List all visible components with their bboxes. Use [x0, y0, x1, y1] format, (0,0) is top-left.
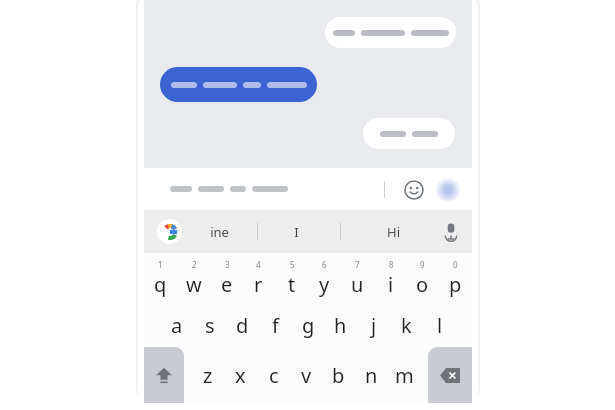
staticText: e — [221, 271, 233, 298]
button[interactable]: Message bubble — [363, 118, 455, 149]
button[interactable]: s — [193, 303, 226, 347]
staticText: x — [235, 362, 246, 389]
button[interactable]: ine — [185, 210, 253, 253]
staticText: b — [332, 362, 345, 389]
staticText: d — [236, 312, 249, 339]
staticText: 4 — [256, 259, 261, 270]
button[interactable]: h — [324, 303, 357, 347]
button[interactable]: x — [224, 347, 257, 403]
staticText: m — [395, 362, 414, 389]
button[interactable]: m — [388, 347, 421, 403]
button[interactable]: 0 — [439, 253, 472, 303]
staticText: i — [388, 271, 394, 298]
button[interactable]: v — [290, 347, 323, 403]
staticText: h — [334, 312, 347, 339]
button[interactable]: Backspace — [428, 347, 472, 403]
staticText: 0 — [453, 259, 458, 270]
staticText: Hi — [387, 223, 400, 241]
button[interactable]: Insert emoji — [402, 178, 426, 202]
staticText: g — [302, 312, 315, 339]
staticText: n — [365, 362, 378, 389]
button[interactable]: Voice input — [440, 220, 462, 242]
button[interactable]: b — [322, 347, 355, 403]
staticText: 5 — [290, 259, 295, 270]
staticText: t — [288, 271, 296, 298]
button[interactable]: 6 — [308, 253, 341, 303]
staticText: f — [272, 312, 279, 339]
staticText: 9 — [420, 259, 425, 270]
staticText: 8 — [389, 259, 394, 270]
staticText: 3 — [225, 259, 230, 270]
staticText: y — [319, 271, 330, 298]
button[interactable]: f — [259, 303, 292, 347]
staticText: o — [416, 271, 429, 298]
button[interactable]: 7 — [341, 253, 374, 303]
staticText: w — [186, 271, 202, 298]
button[interactable]: Shift — [144, 347, 184, 403]
staticText: q — [154, 271, 167, 298]
button[interactable]: Google search — [157, 219, 182, 244]
button[interactable]: 9 — [406, 253, 439, 303]
staticText: k — [401, 312, 412, 339]
button[interactable]: 1 — [144, 253, 177, 303]
staticText: z — [203, 362, 213, 389]
staticText: 7 — [355, 259, 360, 270]
button[interactable]: Hi — [359, 210, 427, 253]
staticText: I — [294, 223, 299, 241]
staticText: u — [351, 271, 364, 298]
staticText: 6 — [322, 259, 327, 270]
staticText: p — [449, 271, 462, 298]
button[interactable]: 8 — [374, 253, 407, 303]
button[interactable]: d — [226, 303, 259, 347]
staticText: v — [301, 362, 312, 389]
button[interactable]: k — [390, 303, 423, 347]
button[interactable]: 4 — [242, 253, 275, 303]
staticText: 2 — [192, 259, 197, 270]
button[interactable]: Message bubble — [325, 17, 456, 48]
staticText: s — [205, 312, 215, 339]
button[interactable]: g — [292, 303, 325, 347]
staticText: c — [269, 362, 279, 389]
button[interactable]: Message bubble — [160, 67, 317, 102]
button[interactable]: a — [160, 303, 193, 347]
button[interactable]: c — [257, 347, 290, 403]
staticText: a — [171, 312, 183, 339]
button[interactable]: Send — [436, 178, 460, 202]
staticText: j — [371, 312, 377, 339]
button[interactable]: 5 — [275, 253, 308, 303]
staticText: l — [437, 312, 443, 339]
button[interactable]: j — [357, 303, 390, 347]
staticText: ine — [210, 223, 229, 241]
button[interactable]: I — [262, 210, 330, 253]
button[interactable]: n — [355, 347, 388, 403]
staticText: r — [254, 271, 263, 298]
staticText: 1 — [158, 259, 163, 270]
button[interactable]: z — [191, 347, 224, 403]
button[interactable]: l — [423, 303, 456, 347]
button[interactable]: 3 — [210, 253, 243, 303]
button[interactable]: 2 — [177, 253, 210, 303]
